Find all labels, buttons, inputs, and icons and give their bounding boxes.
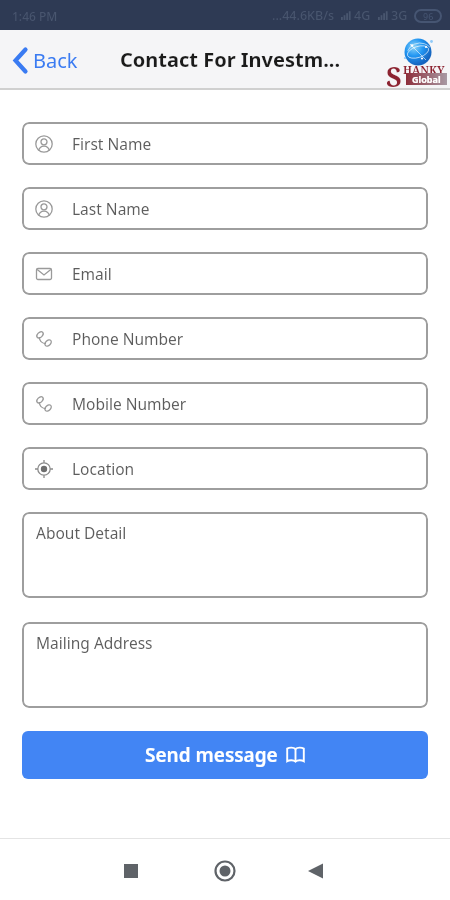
staticText: S bbox=[386, 58, 402, 95]
staticText: 3G bbox=[391, 7, 408, 24]
staticText: 4G bbox=[354, 7, 371, 24]
staticText: Back bbox=[33, 47, 78, 74]
staticText: First Name bbox=[72, 133, 152, 154]
staticText: Location bbox=[72, 458, 135, 479]
staticText: ...44.6KB/s bbox=[272, 7, 335, 24]
staticText: HANKY bbox=[403, 62, 445, 77]
staticText: Mailing Address bbox=[36, 632, 153, 653]
staticText: 96 bbox=[423, 10, 434, 22]
staticText: Last Name bbox=[72, 198, 150, 219]
staticText: About Detail bbox=[36, 522, 127, 543]
staticText: Phone Number bbox=[72, 328, 184, 349]
staticText: Contact For Investm... bbox=[120, 46, 341, 73]
staticText: Global bbox=[412, 73, 441, 85]
staticText: Email bbox=[72, 263, 112, 284]
staticText: Mobile Number bbox=[72, 393, 187, 414]
staticText: Send message bbox=[145, 742, 278, 768]
staticText: 1:46 PM bbox=[12, 8, 58, 24]
